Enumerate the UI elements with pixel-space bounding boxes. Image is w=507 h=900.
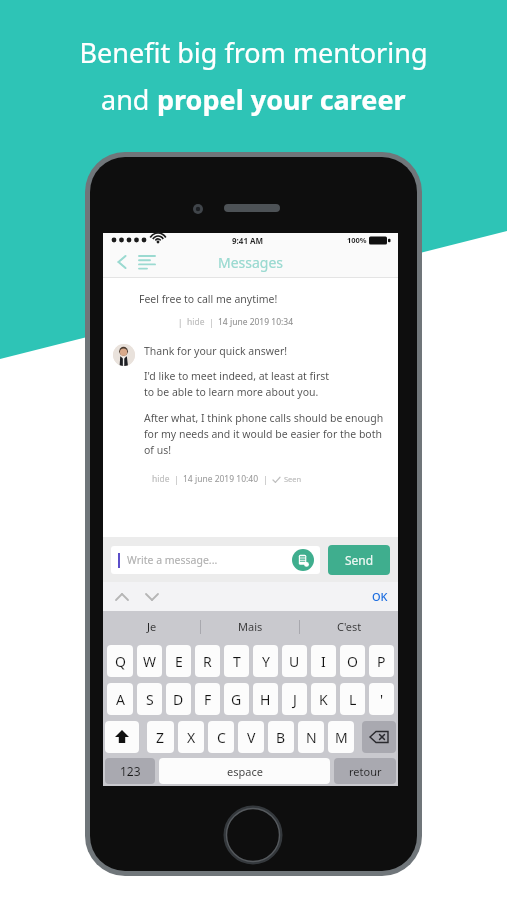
staticText: B	[276, 728, 286, 747]
button[interactable]: N	[298, 721, 324, 753]
staticText: retour	[349, 764, 382, 779]
button[interactable]: Delete	[362, 721, 396, 753]
staticText: |	[259, 474, 272, 485]
button[interactable]: C'est	[300, 611, 398, 642]
staticText: E	[175, 652, 183, 671]
button[interactable]: C	[208, 721, 234, 753]
button[interactable]: H	[253, 683, 278, 715]
staticText: R	[203, 652, 212, 671]
button[interactable]: A	[107, 683, 133, 715]
staticText: L	[349, 690, 357, 709]
staticText: to be able to learn more about you.	[144, 385, 319, 399]
button[interactable]: Contact avatar	[113, 344, 135, 366]
staticText: 9:41 AM	[232, 235, 264, 246]
button[interactable]: J	[282, 683, 307, 715]
staticText: Y	[262, 652, 270, 671]
staticText: |	[170, 474, 183, 485]
staticText: A	[116, 690, 125, 709]
staticText: Mais	[238, 619, 263, 634]
button[interactable]: espace	[159, 758, 330, 784]
staticText: O	[347, 652, 358, 671]
staticText: OK	[372, 589, 388, 604]
button[interactable]: L	[340, 683, 365, 715]
button[interactable]: G	[224, 683, 249, 715]
staticText: propel your career	[157, 81, 406, 118]
staticText: of us!	[144, 443, 172, 457]
button[interactable]: hide	[152, 473, 170, 485]
staticText: for my needs and it would be easier for …	[144, 427, 382, 441]
button[interactable]: I	[311, 645, 336, 677]
staticText: D	[173, 690, 184, 709]
staticText: X	[187, 728, 196, 747]
button[interactable]: Je	[103, 611, 200, 642]
staticText: Q	[115, 652, 126, 671]
button[interactable]: Shift	[105, 721, 139, 753]
button[interactable]: F	[195, 683, 220, 715]
staticText: F	[204, 690, 212, 709]
staticText: espace	[227, 764, 263, 779]
button[interactable]: X	[178, 721, 204, 753]
button[interactable]: S	[137, 683, 162, 715]
button[interactable]: Next field	[141, 586, 163, 608]
staticText: 123	[120, 763, 141, 779]
staticText: '	[380, 690, 384, 709]
staticText: Je	[147, 619, 157, 634]
staticText: N	[306, 728, 317, 747]
button[interactable]: R	[195, 645, 220, 677]
staticText: Benefit big from mentoring	[79, 34, 428, 71]
staticText: J	[293, 690, 297, 709]
staticText: T	[233, 652, 241, 671]
button[interactable]: O	[340, 645, 365, 677]
button[interactable]: retour	[334, 758, 396, 784]
staticText: U	[289, 652, 300, 671]
staticText: W	[143, 652, 157, 671]
staticText: I'd like to meet indeed, at least at fir…	[144, 369, 330, 383]
button[interactable]: V	[238, 721, 264, 753]
button[interactable]: Back	[111, 251, 133, 273]
staticText: Write a message...	[127, 553, 218, 567]
staticText: |	[178, 317, 187, 328]
staticText: C'est	[337, 619, 362, 634]
button[interactable]: B	[268, 721, 294, 753]
button[interactable]: Previous field	[111, 586, 133, 608]
button[interactable]: Send	[328, 545, 390, 575]
button[interactable]: K	[311, 683, 336, 715]
staticText: V	[247, 728, 256, 747]
staticText: 14 june 2019 10:40	[183, 473, 259, 485]
button[interactable]: Y	[253, 645, 278, 677]
staticText: After what, I think phone calls should b…	[144, 411, 384, 425]
button[interactable]: Attach file	[292, 549, 314, 571]
staticText: I	[321, 652, 326, 671]
staticText: Seen	[284, 474, 302, 484]
staticText: and	[101, 81, 157, 118]
button[interactable]: Q	[107, 645, 133, 677]
staticText: |	[205, 317, 218, 328]
button[interactable]: D	[166, 683, 191, 715]
staticText: Messages	[218, 253, 284, 272]
staticText: H	[260, 690, 271, 709]
button[interactable]: P	[369, 645, 394, 677]
button[interactable]: M	[328, 721, 354, 753]
button[interactable]: 123	[105, 758, 155, 784]
button[interactable]: Mais	[201, 611, 299, 642]
button[interactable]: '	[369, 683, 394, 715]
button[interactable]: Write a message...	[111, 546, 320, 574]
staticText: M	[335, 728, 348, 747]
button[interactable]: E	[166, 645, 191, 677]
staticText: 100%	[347, 235, 367, 245]
button[interactable]: T	[224, 645, 249, 677]
staticText: Send	[345, 552, 374, 568]
button[interactable]: OK	[372, 589, 388, 604]
staticText: G	[231, 690, 242, 709]
button[interactable]: hide	[187, 316, 205, 328]
button[interactable]: Menu	[136, 250, 160, 274]
staticText: S	[146, 690, 154, 709]
button[interactable]: U	[282, 645, 307, 677]
staticText: Thank for your quick answer!	[144, 344, 288, 358]
staticText: Z	[156, 728, 165, 747]
button[interactable]: Z	[147, 721, 174, 753]
staticText: C	[217, 728, 226, 747]
staticText: 14 june 2019 10:34	[218, 316, 294, 328]
staticText: P	[377, 652, 386, 671]
button[interactable]: W	[137, 645, 162, 677]
